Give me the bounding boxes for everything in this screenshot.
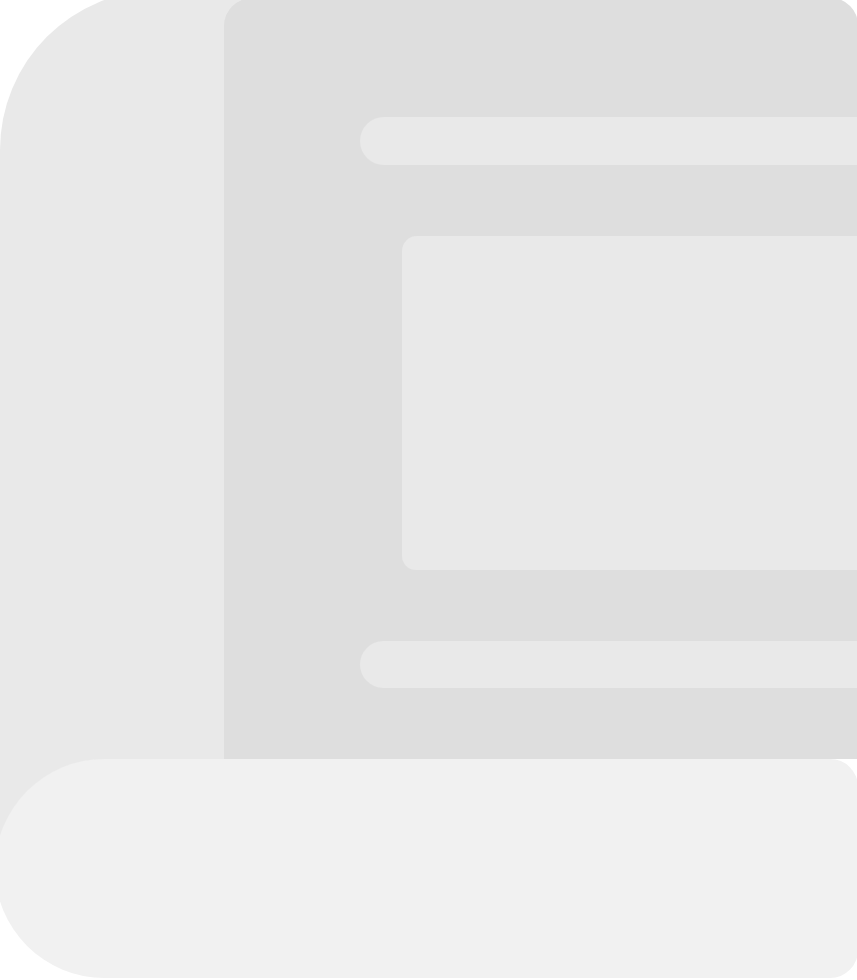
button[interactable]: Open book [0,0,857,980]
